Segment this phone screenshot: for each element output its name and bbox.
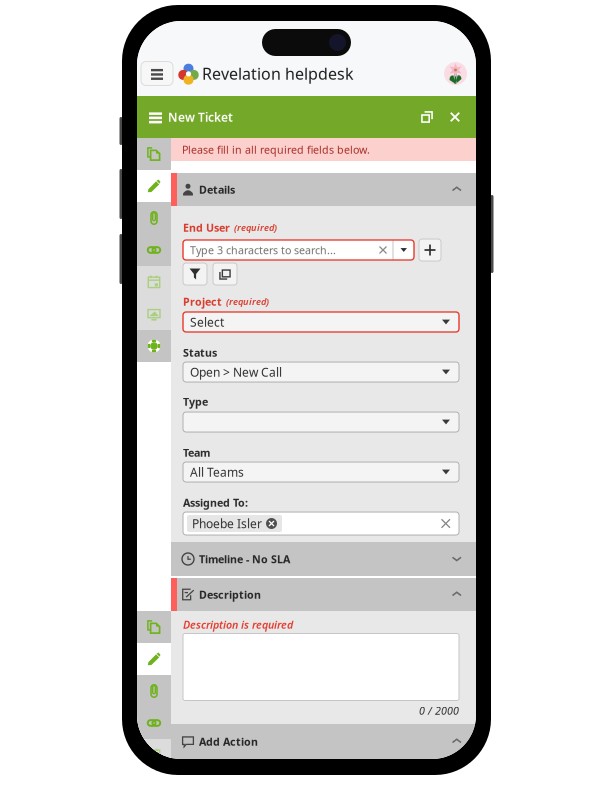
button[interactable]: Calendar <box>137 739 171 771</box>
staticText: Select <box>190 314 224 330</box>
staticText: Type 3 characters to search... <box>190 243 336 257</box>
button[interactable]: Account <box>444 62 467 85</box>
button[interactable]: New Ticket <box>137 96 241 138</box>
button[interactable]: Description <box>171 578 476 611</box>
button[interactable]: Calendar <box>137 266 171 298</box>
button[interactable]: Close <box>442 104 468 130</box>
button[interactable]: Open > New Call <box>183 362 459 382</box>
button[interactable]: Add Action <box>171 724 476 759</box>
staticText: Add Action <box>199 734 258 749</box>
button[interactable]: Settings <box>137 330 171 362</box>
button[interactable]: Copy records <box>213 263 237 285</box>
button[interactable]: Reports <box>137 771 171 792</box>
staticText: Details <box>199 182 235 197</box>
staticText: Status <box>183 345 217 360</box>
staticText: Timeline - No SLA <box>199 552 290 566</box>
staticText: All Teams <box>190 464 244 480</box>
staticText: Please fill in all required fields below… <box>182 142 370 157</box>
button[interactable]: Select <box>183 312 459 332</box>
button[interactable]: Links <box>137 234 171 266</box>
button[interactable]: Documents <box>137 611 171 643</box>
button[interactable]: Details <box>171 173 476 206</box>
button[interactable]: Filter <box>183 263 207 285</box>
staticText: New Ticket <box>168 109 233 125</box>
staticText: Revelation helpdesk <box>202 63 354 84</box>
staticText: 0 / 2000 <box>419 703 459 718</box>
staticText: (required) <box>234 221 277 234</box>
staticText: Description <box>199 587 261 602</box>
button[interactable]: Attachments <box>137 202 171 234</box>
staticText: Team <box>183 445 210 460</box>
button[interactable]: Documents <box>137 138 171 170</box>
button[interactable]: Reports <box>137 298 171 330</box>
staticText: Type <box>183 394 208 409</box>
button[interactable]: Edit <box>137 170 171 202</box>
staticText: Project <box>183 294 222 309</box>
staticText: Assigned To: <box>183 495 248 510</box>
button[interactable]: Edit <box>137 643 171 675</box>
button[interactable]: Add end user <box>419 239 441 261</box>
button[interactable]: Links <box>137 707 171 739</box>
staticText: Phoebe Isler <box>192 515 262 531</box>
staticText: End User <box>183 220 230 235</box>
button[interactable]: Timeline - No SLA <box>171 542 476 576</box>
staticText: Open > New Call <box>190 364 282 380</box>
button[interactable]: All Teams <box>183 462 459 482</box>
staticText: (required) <box>226 295 269 308</box>
button[interactable] <box>183 412 459 432</box>
staticText: Description is required <box>183 617 293 632</box>
button[interactable]: Attachments <box>137 675 171 707</box>
button[interactable]: Restore window <box>414 104 440 130</box>
button[interactable]: Menu <box>141 61 173 85</box>
